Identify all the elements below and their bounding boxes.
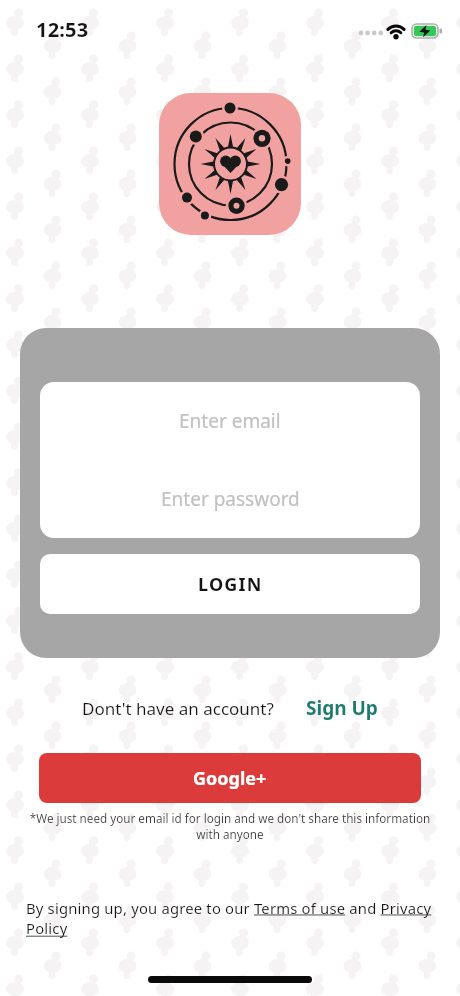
- staticText: Google+: [193, 766, 267, 791]
- staticText: Dont't have an account?: [82, 697, 274, 720]
- staticText: LOGIN: [198, 572, 263, 597]
- button[interactable]: Enter password: [40, 460, 420, 538]
- button[interactable]: LOGIN: [40, 554, 420, 614]
- staticText: Enter email: [179, 408, 281, 434]
- staticText: 12:53: [36, 16, 89, 43]
- staticText: *We just need your email id for login an…: [0, 810, 460, 843]
- staticText: By signing up, you agree to our Terms of…: [26, 898, 432, 939]
- button[interactable]: Google+: [39, 753, 421, 803]
- staticText: Sign Up: [306, 695, 378, 721]
- button[interactable]: [159, 93, 301, 235]
- staticText: Enter password: [161, 486, 300, 512]
- button[interactable]: By signing up, you agree to our Terms of…: [26, 898, 432, 939]
- button[interactable]: Enter email: [40, 382, 420, 460]
- button[interactable]: Sign Up: [306, 695, 378, 721]
